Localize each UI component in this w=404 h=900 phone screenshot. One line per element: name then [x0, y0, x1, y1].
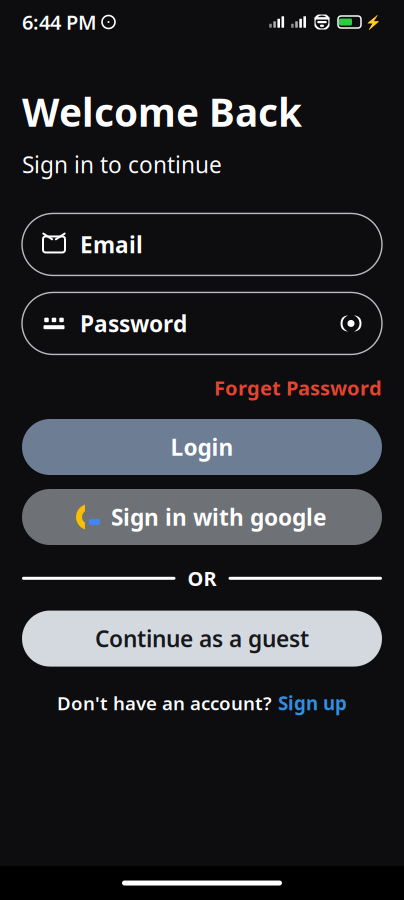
staticText: 6:44 PM	[22, 9, 97, 35]
staticText: Don't have an account?	[57, 691, 272, 715]
staticText: Forget Password	[214, 374, 382, 401]
button[interactable]: Don't have an account?	[0, 687, 404, 719]
staticText: Continue as a guest	[95, 623, 309, 654]
staticText: Sign in with google	[111, 502, 327, 532]
button[interactable]: Email	[22, 213, 382, 275]
staticText: Password	[80, 308, 187, 338]
staticText: Login	[170, 432, 233, 462]
staticText: OR	[187, 565, 216, 592]
button[interactable]: Password	[22, 292, 382, 354]
staticText: Welcome Back	[22, 86, 302, 137]
staticText: ⚡	[365, 14, 382, 30]
button[interactable]: Continue as a guest	[22, 611, 382, 667]
staticText: Email	[80, 229, 143, 259]
staticText: Sign up	[278, 691, 347, 715]
button[interactable]: Login	[22, 419, 382, 475]
button[interactable]: Forget Password	[214, 368, 382, 407]
staticText: Sign in to continue	[22, 149, 222, 179]
button[interactable]: Sign in with google	[22, 489, 382, 545]
